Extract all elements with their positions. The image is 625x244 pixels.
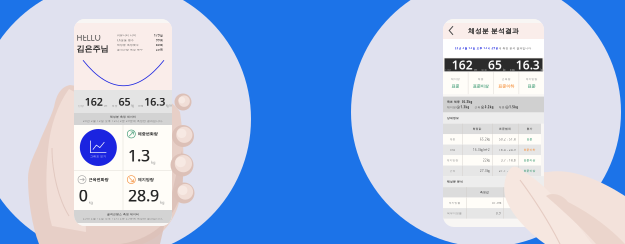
staticText: kg/m²: [166, 104, 173, 107]
staticText: 상세정보: [447, 116, 459, 120]
staticText: 23년 2월 12일 오후 12시 29분: [454, 46, 498, 50]
staticText: 목표 체중: [447, 100, 460, 104]
staticText: BMI: [450, 148, 455, 152]
staticText: 복부지방률: [447, 212, 462, 215]
staticText: cm: [474, 68, 477, 72]
staticText: 40회: [156, 43, 163, 47]
staticText: 1.3: [128, 145, 150, 166]
staticText: kg: [131, 104, 134, 107]
staticText: 골격근량 측정 횟수: [117, 48, 143, 51]
staticText: 23년 2월 12일 오후 12시 2분 29분에 측정한 결과입니다.: [83, 217, 163, 220]
button[interactable]: 체중변화량: [123, 125, 172, 170]
staticText: 체지방량: [526, 77, 538, 81]
staticText: 0.9: [496, 212, 501, 215]
staticText: 표준이하: [523, 148, 535, 151]
staticText: 체성분 측정횟수: [117, 43, 139, 46]
staticText: 체중변화량: [138, 131, 158, 136]
staticText: 99회: [156, 38, 163, 42]
staticText: 표준: [451, 84, 459, 89]
staticText: 신장: [78, 104, 84, 107]
staticText: 체지방: [451, 77, 460, 81]
staticText: 체중: [112, 104, 118, 107]
staticText: 근육변화량: [88, 177, 108, 182]
button[interactable]: 제지방량: [123, 171, 172, 210]
staticText: 표준이상: [523, 169, 535, 172]
staticText: 신장: [445, 68, 451, 72]
staticText: 65: [488, 57, 502, 73]
staticText: 체성분 분석: [447, 180, 463, 183]
staticText: 표준: [528, 84, 536, 89]
staticText: 체중: [449, 138, 455, 141]
staticText: 3.7 - 14.8: [501, 159, 516, 162]
staticText: 에 측정 분석 결과입니다.: [498, 46, 532, 50]
staticText: HELLO: [76, 32, 100, 43]
staticText: kg: [503, 68, 506, 72]
staticText: 31.9%: [492, 201, 501, 205]
staticText: 체중: [481, 68, 487, 72]
staticText: 김은주님: [76, 44, 108, 54]
staticText: 16.3: [516, 57, 540, 73]
staticText: 27.3kg: [480, 169, 490, 173]
staticText: 18.4 - 24.9: [499, 148, 516, 152]
staticText: 근육: [474, 106, 480, 109]
staticText: 측정값: [472, 127, 481, 130]
staticText: 162: [452, 57, 473, 73]
staticText: 16.3: [144, 94, 165, 109]
staticText: 표준이하: [498, 84, 514, 89]
staticText: 표준: [526, 138, 532, 141]
staticText: 50.2 - 51.4: [499, 138, 516, 141]
staticText: 표준이상: [523, 159, 535, 162]
staticText: 28.4 - 34.7: [522, 201, 539, 205]
button[interactable]: 뒤로: [447, 25, 457, 37]
staticText: 체성분 측정 데이터: [110, 115, 136, 118]
staticText: 체성분 분석결과: [468, 27, 519, 35]
staticText: 20회: [156, 48, 163, 51]
staticText: 1.5kg: [509, 105, 518, 109]
staticText: 56.3kg: [461, 100, 472, 104]
staticText: 0: [79, 185, 88, 206]
staticText: 162: [85, 94, 103, 109]
staticText: 평가: [526, 127, 532, 130]
staticText: 28.9: [128, 185, 159, 206]
staticText: 65.2kg: [480, 138, 490, 141]
staticText: 체중: [478, 77, 484, 81]
staticText: 23년 2월 12일 오후 12시 2분 29분에 측정한 결과입니다.: [83, 119, 163, 123]
staticText: 65: [118, 94, 130, 109]
staticText: 21.1 - 25.8: [499, 169, 516, 173]
staticText: 16.3kg/m^2: [473, 148, 490, 152]
staticText: 표준이상: [473, 84, 489, 89]
staticText: 제지방량: [138, 177, 154, 182]
staticText: CX운동 횟수: [117, 38, 134, 42]
staticText: BMI: [510, 68, 515, 72]
staticText: 0.2kg: [485, 105, 494, 109]
button[interactable]: 근육변화량: [74, 171, 123, 210]
staticText: 체지방률: [448, 201, 460, 204]
staticText: 체지방량: [446, 159, 458, 162]
staticText: cm: [104, 104, 107, 107]
staticText: 그래프 보기: [90, 155, 106, 158]
staticText: BMI: [138, 104, 143, 107]
staticText: 근육: [449, 169, 455, 172]
staticText: 179일: [154, 34, 163, 37]
staticText: 측정값: [480, 191, 489, 194]
staticText: 근육량: [502, 77, 511, 81]
staticText: kg: [151, 159, 155, 165]
button[interactable]: 그래프 보기: [74, 125, 123, 170]
staticText: 골격근량스 측정 데이터: [107, 213, 139, 216]
staticText: 22kg: [483, 159, 490, 162]
staticText: 체지방: [447, 106, 456, 109]
staticText: kg: [160, 199, 164, 205]
staticText: kg: [89, 199, 93, 205]
staticText: 체중: [499, 106, 505, 109]
staticText: 1.3kg: [460, 105, 469, 109]
staticText: 커뮤니티 시작: [117, 34, 136, 37]
staticText: kg/m²: [540, 68, 547, 72]
staticText: 표준범위: [499, 127, 511, 130]
